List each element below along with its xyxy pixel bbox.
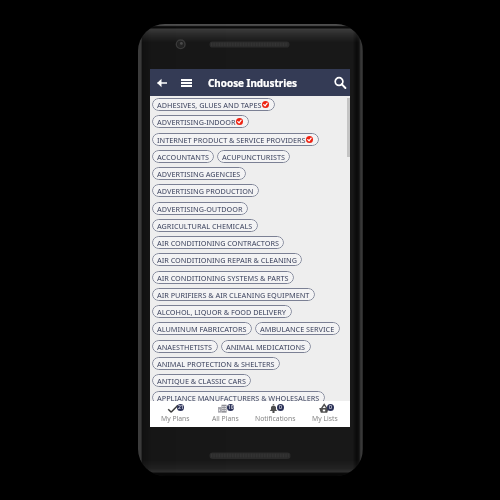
staticText: ADVERTISING-OUTDOOR bbox=[157, 204, 243, 214]
staticText: ADHESIVES, GLUES AND TAPES bbox=[157, 100, 262, 110]
staticText: 0 bbox=[279, 404, 282, 411]
button[interactable]: Back bbox=[154, 75, 169, 90]
button[interactable]: AMBULANCE SERVICE bbox=[255, 322, 340, 335]
button[interactable]: AIR CONDITIONING SYSTEMS & PARTS bbox=[152, 271, 294, 284]
staticText: ANIMAL PROTECTION & SHELTERS bbox=[157, 359, 275, 369]
button[interactable]: 10 bbox=[200, 401, 250, 427]
button[interactable]: Menu bbox=[179, 76, 193, 90]
button[interactable]: AGRICULTURAL CHEMICALS bbox=[152, 219, 258, 232]
button[interactable]: ADVERTISING-OUTDOOR bbox=[152, 202, 248, 215]
staticText: AMBULANCE SERVICE bbox=[260, 324, 335, 334]
staticText: AIR CONDITIONING REPAIR & CLEANING bbox=[157, 255, 297, 265]
button[interactable]: ANIMAL PROTECTION & SHELTERS bbox=[152, 357, 280, 370]
staticText: ADVERTISING-INDOOR bbox=[157, 117, 236, 127]
button[interactable]: ADVERTISING PRODUCTION bbox=[152, 184, 259, 197]
button[interactable]: 0 bbox=[300, 401, 350, 427]
button[interactable]: Search bbox=[332, 75, 348, 91]
staticText: ACUPUNCTURISTS bbox=[222, 152, 285, 162]
button[interactable]: 21 bbox=[150, 401, 200, 427]
staticText: INTERNET PRODUCT & SERVICE PROVIDERS bbox=[157, 135, 306, 145]
button[interactable]: AIR CONDITIONING REPAIR & CLEANING bbox=[152, 253, 302, 266]
staticText: Notifications bbox=[255, 414, 296, 423]
staticText: AIR PURIFIERS & AIR CLEANING EQUIPMENT bbox=[157, 290, 310, 300]
button[interactable]: ADHESIVES, GLUES AND TAPES bbox=[152, 98, 275, 111]
button[interactable]: AIR PURIFIERS & AIR CLEANING EQUIPMENT bbox=[152, 288, 315, 301]
staticText: 21 bbox=[178, 404, 184, 411]
button[interactable]: AIR CONDITIONING CONTRACTORS bbox=[152, 236, 284, 249]
button[interactable]: APPLIANCE MANUFACTURERS & WHOLESALERS bbox=[152, 391, 325, 404]
button[interactable]: ACUPUNCTURISTS bbox=[217, 150, 290, 163]
staticText: ALUMINUM FABRICATORS bbox=[157, 324, 247, 334]
button[interactable]: ALCOHOL, LIQUOR & FOOD DELIVERY bbox=[152, 305, 292, 318]
button[interactable]: ANIMAL MEDICATIONS bbox=[221, 340, 311, 353]
staticText: AIR CONDITIONING SYSTEMS & PARTS bbox=[157, 273, 289, 283]
button[interactable]: ANAESTHETISTS bbox=[152, 340, 218, 353]
staticText: 10 bbox=[228, 404, 234, 411]
staticText: ACCOUNTANTS bbox=[157, 152, 209, 162]
button[interactable]: ANTIQUE & CLASSIC CARS bbox=[152, 374, 251, 387]
staticText: ALCOHOL, LIQUOR & FOOD DELIVERY bbox=[157, 307, 287, 317]
staticText: ANIMAL MEDICATIONS bbox=[226, 342, 306, 352]
button[interactable]: 0 bbox=[250, 401, 300, 427]
staticText: ANTIQUE & CLASSIC CARS bbox=[157, 376, 246, 386]
staticText: AGRICULTURAL CHEMICALS bbox=[157, 221, 253, 231]
staticText: Choose Industries bbox=[208, 76, 298, 89]
staticText: APPLIANCE MANUFACTURERS & WHOLESALERS bbox=[157, 393, 320, 403]
staticText: 0 bbox=[329, 404, 332, 411]
staticText: All Plans bbox=[212, 414, 239, 423]
button[interactable]: INTERNET PRODUCT & SERVICE PROVIDERS bbox=[152, 133, 319, 146]
button[interactable]: ADVERTISING-INDOOR bbox=[152, 115, 249, 128]
button[interactable]: ACCOUNTANTS bbox=[152, 150, 214, 163]
staticText: My Lists bbox=[312, 414, 338, 423]
button[interactable]: ALUMINUM FABRICATORS bbox=[152, 322, 252, 335]
staticText: ADVERTISING PRODUCTION bbox=[157, 186, 254, 196]
staticText: ADVERTISING AGENCIES bbox=[157, 169, 241, 179]
button[interactable]: ADVERTISING AGENCIES bbox=[152, 167, 246, 180]
staticText: AIR CONDITIONING CONTRACTORS bbox=[157, 238, 279, 248]
staticText: My Plans bbox=[161, 414, 190, 423]
staticText: ANAESTHETISTS bbox=[157, 342, 213, 352]
